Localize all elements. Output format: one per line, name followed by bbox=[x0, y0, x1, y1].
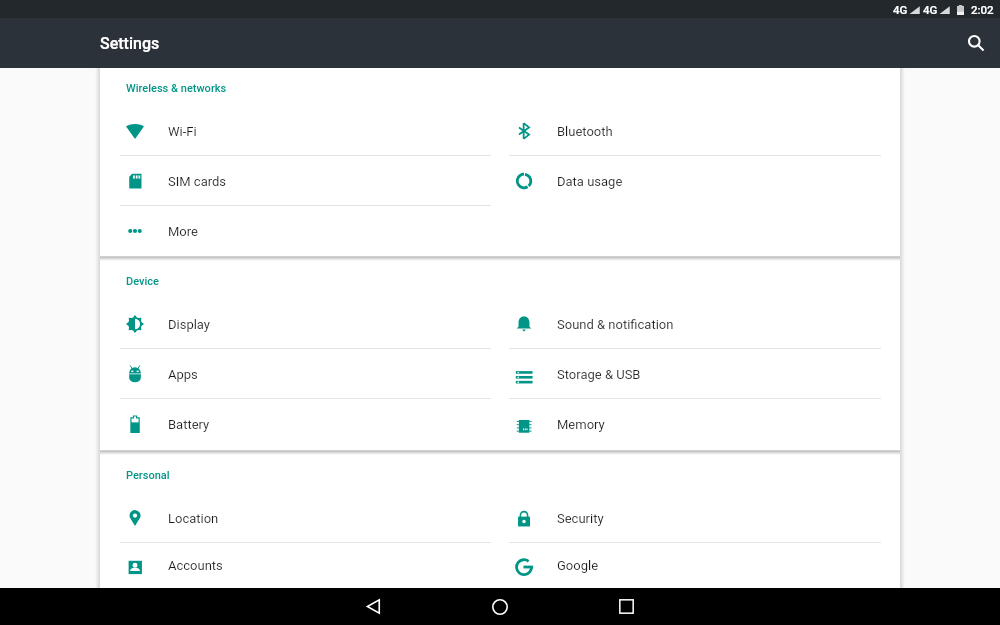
staticText: Display bbox=[168, 317, 210, 332]
button[interactable]: Location bbox=[120, 493, 500, 543]
staticText: Accounts bbox=[168, 558, 223, 573]
button[interactable]: More bbox=[120, 206, 500, 256]
staticText: SIM cards bbox=[168, 174, 227, 189]
button[interactable]: Google bbox=[500, 543, 881, 588]
staticText: 4G bbox=[893, 3, 908, 16]
button[interactable]: Display bbox=[120, 299, 500, 349]
button[interactable]: Security bbox=[500, 493, 881, 543]
staticText: Google bbox=[557, 558, 599, 573]
staticText: Battery bbox=[168, 417, 210, 432]
button[interactable]: Back bbox=[311, 588, 437, 625]
staticText: Settings bbox=[100, 34, 160, 53]
staticText: 2:02 bbox=[971, 3, 994, 16]
button[interactable]: Search bbox=[957, 24, 995, 62]
staticText: Sound & notification bbox=[557, 317, 674, 332]
button[interactable]: Bluetooth bbox=[500, 106, 881, 156]
staticText: Data usage bbox=[557, 174, 623, 189]
button[interactable]: Data usage bbox=[500, 156, 881, 206]
staticText: Storage & USB bbox=[557, 367, 641, 382]
staticText: Bluetooth bbox=[557, 124, 613, 139]
staticText: 4G bbox=[923, 3, 938, 16]
button[interactable]: Memory bbox=[500, 399, 881, 449]
staticText: Wireless & networks bbox=[126, 82, 227, 95]
button[interactable]: Storage & USB bbox=[500, 349, 881, 399]
staticText: Memory bbox=[557, 417, 605, 432]
staticText: Location bbox=[168, 511, 219, 526]
button[interactable]: Apps bbox=[120, 349, 500, 399]
staticText: More bbox=[168, 224, 198, 239]
button[interactable]: Accounts bbox=[120, 543, 500, 588]
staticText: Security bbox=[557, 511, 604, 526]
staticText: Wi-Fi bbox=[168, 124, 197, 139]
button[interactable]: Battery bbox=[120, 399, 500, 449]
staticText: Device bbox=[126, 275, 159, 288]
button[interactable]: Sound & notification bbox=[500, 299, 881, 349]
button[interactable]: Home bbox=[437, 588, 563, 625]
button[interactable]: SIM cards bbox=[120, 156, 500, 206]
staticText: Apps bbox=[168, 367, 198, 382]
button[interactable]: Recents bbox=[563, 588, 689, 625]
staticText: Personal bbox=[126, 469, 170, 482]
button[interactable]: Wi-Fi bbox=[120, 106, 500, 156]
